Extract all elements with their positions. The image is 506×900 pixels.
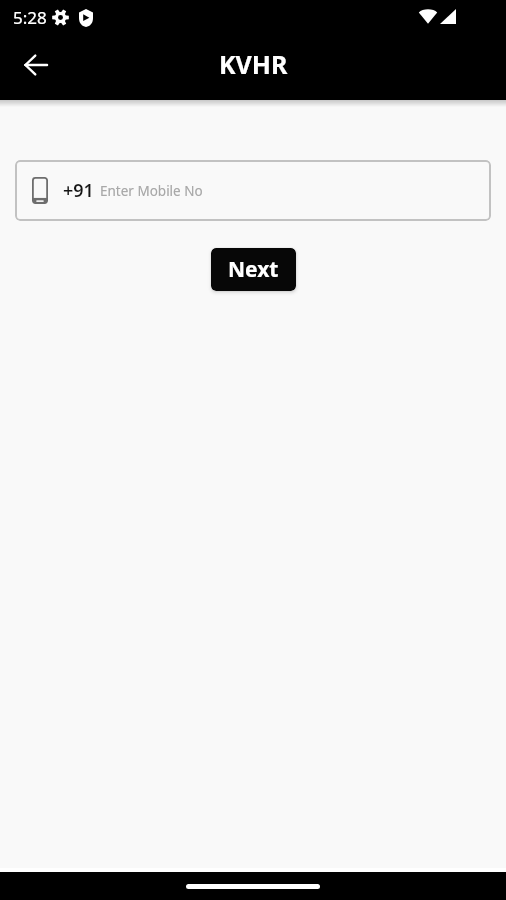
button[interactable]: Next — [211, 248, 296, 291]
button[interactable]: Back — [12, 41, 60, 89]
button[interactable]: +91 — [15, 160, 491, 221]
staticText: Next — [228, 255, 279, 284]
staticText: KVHR — [219, 47, 288, 81]
staticText: 5:28 — [13, 6, 47, 29]
staticText: Enter Mobile No — [100, 182, 203, 200]
staticText: +91 — [63, 178, 94, 203]
